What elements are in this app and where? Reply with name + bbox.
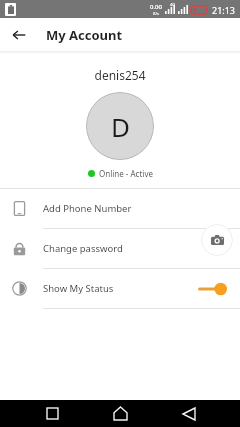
button[interactable]: Back [172,400,206,427]
button[interactable]: Show My Status [0,269,240,308]
button[interactable]: Show My Status toggle [198,282,228,296]
staticText: Add Phone Number [43,202,228,215]
staticText: Change password [43,242,228,255]
staticText: K/s [153,11,159,16]
button[interactable]: Change profile photo [201,224,233,256]
staticText: 0.00 [150,3,162,11]
staticText: Show My Status [43,282,198,295]
button[interactable]: Add Phone Number [0,189,240,228]
staticText: 21:13 [212,4,236,16]
button[interactable]: D [86,92,154,160]
staticText: denis254 [0,67,240,83]
staticText: 4G [170,2,176,7]
staticText: Online - Active [99,168,153,179]
staticText: D [111,109,130,144]
staticText: My Account [46,26,123,44]
button[interactable]: Change password [0,229,240,268]
button[interactable]: Recent apps [35,400,69,427]
button[interactable]: Home [103,400,137,427]
button[interactable]: Back [8,24,30,46]
